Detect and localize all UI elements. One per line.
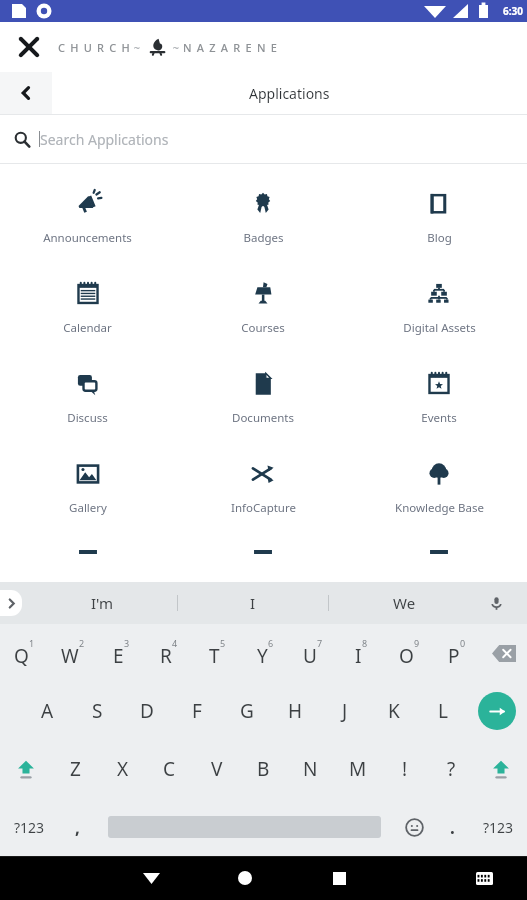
staticText: Applications (249, 84, 330, 103)
button[interactable]: G (222, 682, 271, 740)
button[interactable]: Discuss (0, 356, 175, 446)
staticText: 6 (268, 637, 274, 649)
button[interactable]: O (385, 624, 433, 682)
staticText: D (140, 698, 154, 724)
staticText: P (448, 643, 460, 669)
staticText: Events (421, 410, 457, 426)
staticText: S (92, 698, 103, 724)
button[interactable]: W (49, 624, 97, 682)
staticText: G (240, 698, 254, 724)
staticText: I (355, 643, 362, 669)
button[interactable]: Blog (351, 176, 527, 266)
staticText: N A Z A R E N E (183, 40, 279, 55)
staticText: We (393, 593, 416, 613)
button[interactable]: InfoCapture (175, 446, 351, 536)
staticText: F (192, 698, 202, 724)
staticText: M (349, 756, 367, 782)
button[interactable]: Emoji (393, 798, 435, 856)
button[interactable]: S (72, 682, 122, 740)
staticText: . (450, 816, 455, 839)
button[interactable]: J (320, 682, 369, 740)
button[interactable]: Digital Assets (351, 266, 527, 356)
staticText: U (303, 643, 317, 669)
button[interactable]: K (369, 682, 418, 740)
button[interactable]: , (58, 798, 96, 856)
button[interactable]: N (287, 740, 334, 798)
button[interactable]: Applications (52, 72, 527, 114)
button[interactable]: V (193, 740, 240, 798)
staticText: ?123 (483, 818, 514, 837)
button[interactable]: . (435, 798, 469, 856)
button[interactable]: ! (381, 740, 428, 798)
button[interactable]: Backspace (481, 624, 527, 682)
button[interactable]: ?123 (469, 798, 527, 856)
button[interactable]: Voice input (479, 582, 513, 624)
button[interactable]: I'm (28, 582, 177, 624)
button[interactable]: L (418, 682, 467, 740)
button[interactable]: We (329, 582, 479, 624)
button[interactable]: ?123 (0, 798, 58, 856)
button[interactable]: Enter (467, 682, 527, 740)
button[interactable]: Q (0, 624, 49, 682)
button[interactable]: E (97, 624, 145, 682)
button[interactable]: Search Applications (0, 115, 527, 163)
button[interactable]: Badges (175, 176, 351, 266)
staticText: ?123 (14, 818, 45, 837)
button[interactable]: Hide keyboard (104, 856, 198, 900)
button[interactable]: Space (96, 798, 393, 856)
button[interactable]: A (22, 682, 72, 740)
staticText: Documents (232, 410, 294, 426)
staticText: 9 (414, 637, 420, 649)
staticText: O (399, 643, 414, 669)
staticText: E (113, 643, 124, 669)
button[interactable]: P (433, 624, 481, 682)
button[interactable]: Switch keyboard (442, 856, 527, 900)
staticText: ! (402, 756, 408, 782)
button[interactable]: ? (428, 740, 475, 798)
button[interactable]: Back (0, 72, 52, 114)
button[interactable] (175, 536, 351, 566)
button[interactable]: Gallery (0, 446, 175, 536)
staticText: Calendar (63, 320, 112, 336)
staticText: 6:30 (503, 4, 523, 18)
button[interactable]: U (289, 624, 337, 682)
button[interactable]: Home (198, 856, 292, 900)
staticText: V (211, 756, 223, 782)
staticText: N (303, 756, 318, 782)
button[interactable]: C (146, 740, 193, 798)
button[interactable]: T (193, 624, 241, 682)
button[interactable]: Calendar (0, 266, 175, 356)
button[interactable]: More suggestions (0, 590, 22, 616)
button[interactable]: Knowledge Base (351, 446, 527, 536)
staticText: 5 (220, 637, 226, 649)
staticText: Announcements (43, 230, 132, 246)
staticText: 1 (29, 637, 35, 649)
button[interactable]: I (337, 624, 385, 682)
button[interactable] (0, 536, 175, 566)
button[interactable]: D (122, 682, 172, 740)
button[interactable] (351, 536, 527, 566)
button[interactable]: Y (241, 624, 289, 682)
button[interactable]: Courses (175, 266, 351, 356)
button[interactable]: Shift (0, 740, 52, 798)
staticText: C (163, 756, 176, 782)
staticText: ~ (170, 40, 183, 55)
button[interactable]: Documents (175, 356, 351, 446)
button[interactable]: I (178, 582, 328, 624)
button[interactable]: Shift (475, 740, 527, 798)
button[interactable]: X (99, 740, 146, 798)
button[interactable]: M (334, 740, 381, 798)
button[interactable]: Z (52, 740, 99, 798)
staticText: R (160, 643, 172, 669)
button[interactable]: Close (0, 22, 58, 72)
staticText: X (117, 756, 129, 782)
button[interactable]: Events (351, 356, 527, 446)
staticText: I'm (91, 593, 114, 613)
button[interactable]: B (240, 740, 287, 798)
button[interactable]: H (271, 682, 320, 740)
button[interactable]: Recents (292, 856, 386, 900)
button[interactable]: Announcements (0, 176, 175, 266)
button[interactable]: R (145, 624, 193, 682)
staticText: 3 (124, 637, 130, 649)
button[interactable]: F (172, 682, 222, 740)
